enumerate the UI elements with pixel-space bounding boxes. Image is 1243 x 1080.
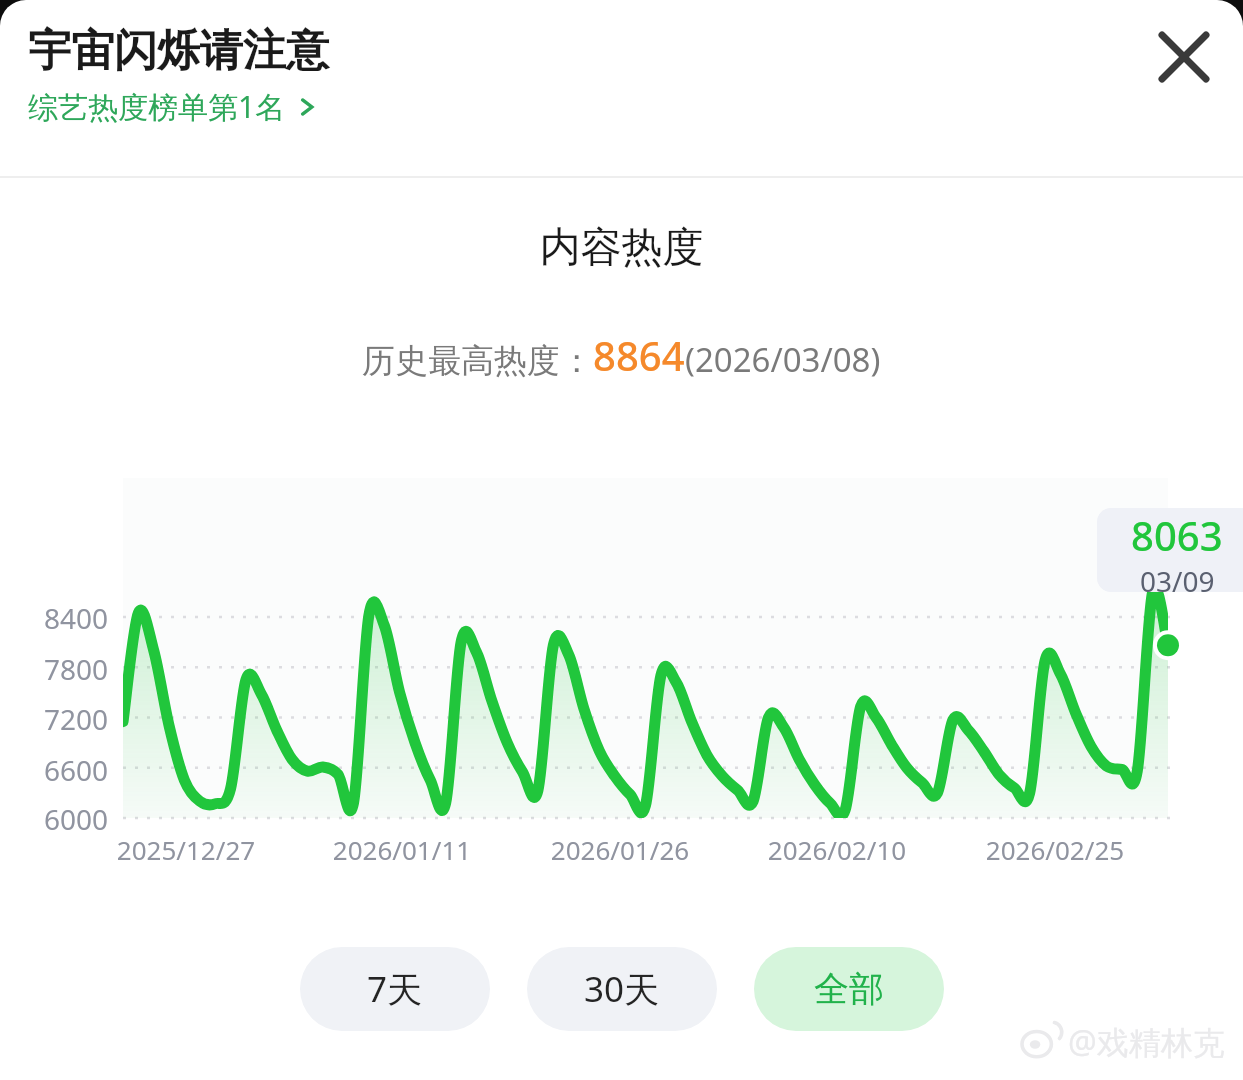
staticText: 6600 (8, 751, 108, 789)
staticText: 30天 (584, 965, 660, 1013)
button[interactable]: 30天 (527, 947, 717, 1031)
staticText: 8063 (1131, 508, 1223, 562)
staticText: 7800 (8, 650, 108, 688)
staticText: @戏精林克 (1068, 1020, 1225, 1064)
staticText: 6000 (8, 800, 108, 838)
staticText: 03/09 (1140, 562, 1215, 592)
button[interactable]: 综艺热度榜单第1名 (28, 86, 318, 127)
staticText: 7200 (8, 700, 108, 738)
button[interactable]: Close (1147, 20, 1221, 94)
staticText: 8864 (593, 328, 685, 382)
staticText: 历史最高热度： (362, 340, 593, 382)
staticText: 2026/02/25 (955, 832, 1155, 867)
staticText: 2026/01/26 (520, 832, 720, 867)
staticText: 综艺热度榜单第1名 (28, 86, 286, 127)
button[interactable]: 7天 (300, 947, 490, 1031)
staticText: 2026/01/11 (302, 832, 502, 867)
staticText: 内容热度 (0, 222, 1243, 274)
staticText: 全部 (814, 967, 884, 1011)
staticText: 2026/02/10 (737, 832, 937, 867)
staticText: 宇宙闪烁请注意 (28, 24, 329, 78)
staticText: (2026/03/08) (685, 337, 881, 382)
button[interactable]: 全部 (754, 947, 944, 1031)
staticText: 2025/12/27 (86, 832, 286, 867)
staticText: 7天 (367, 965, 423, 1013)
staticText: 8400 (8, 599, 108, 637)
